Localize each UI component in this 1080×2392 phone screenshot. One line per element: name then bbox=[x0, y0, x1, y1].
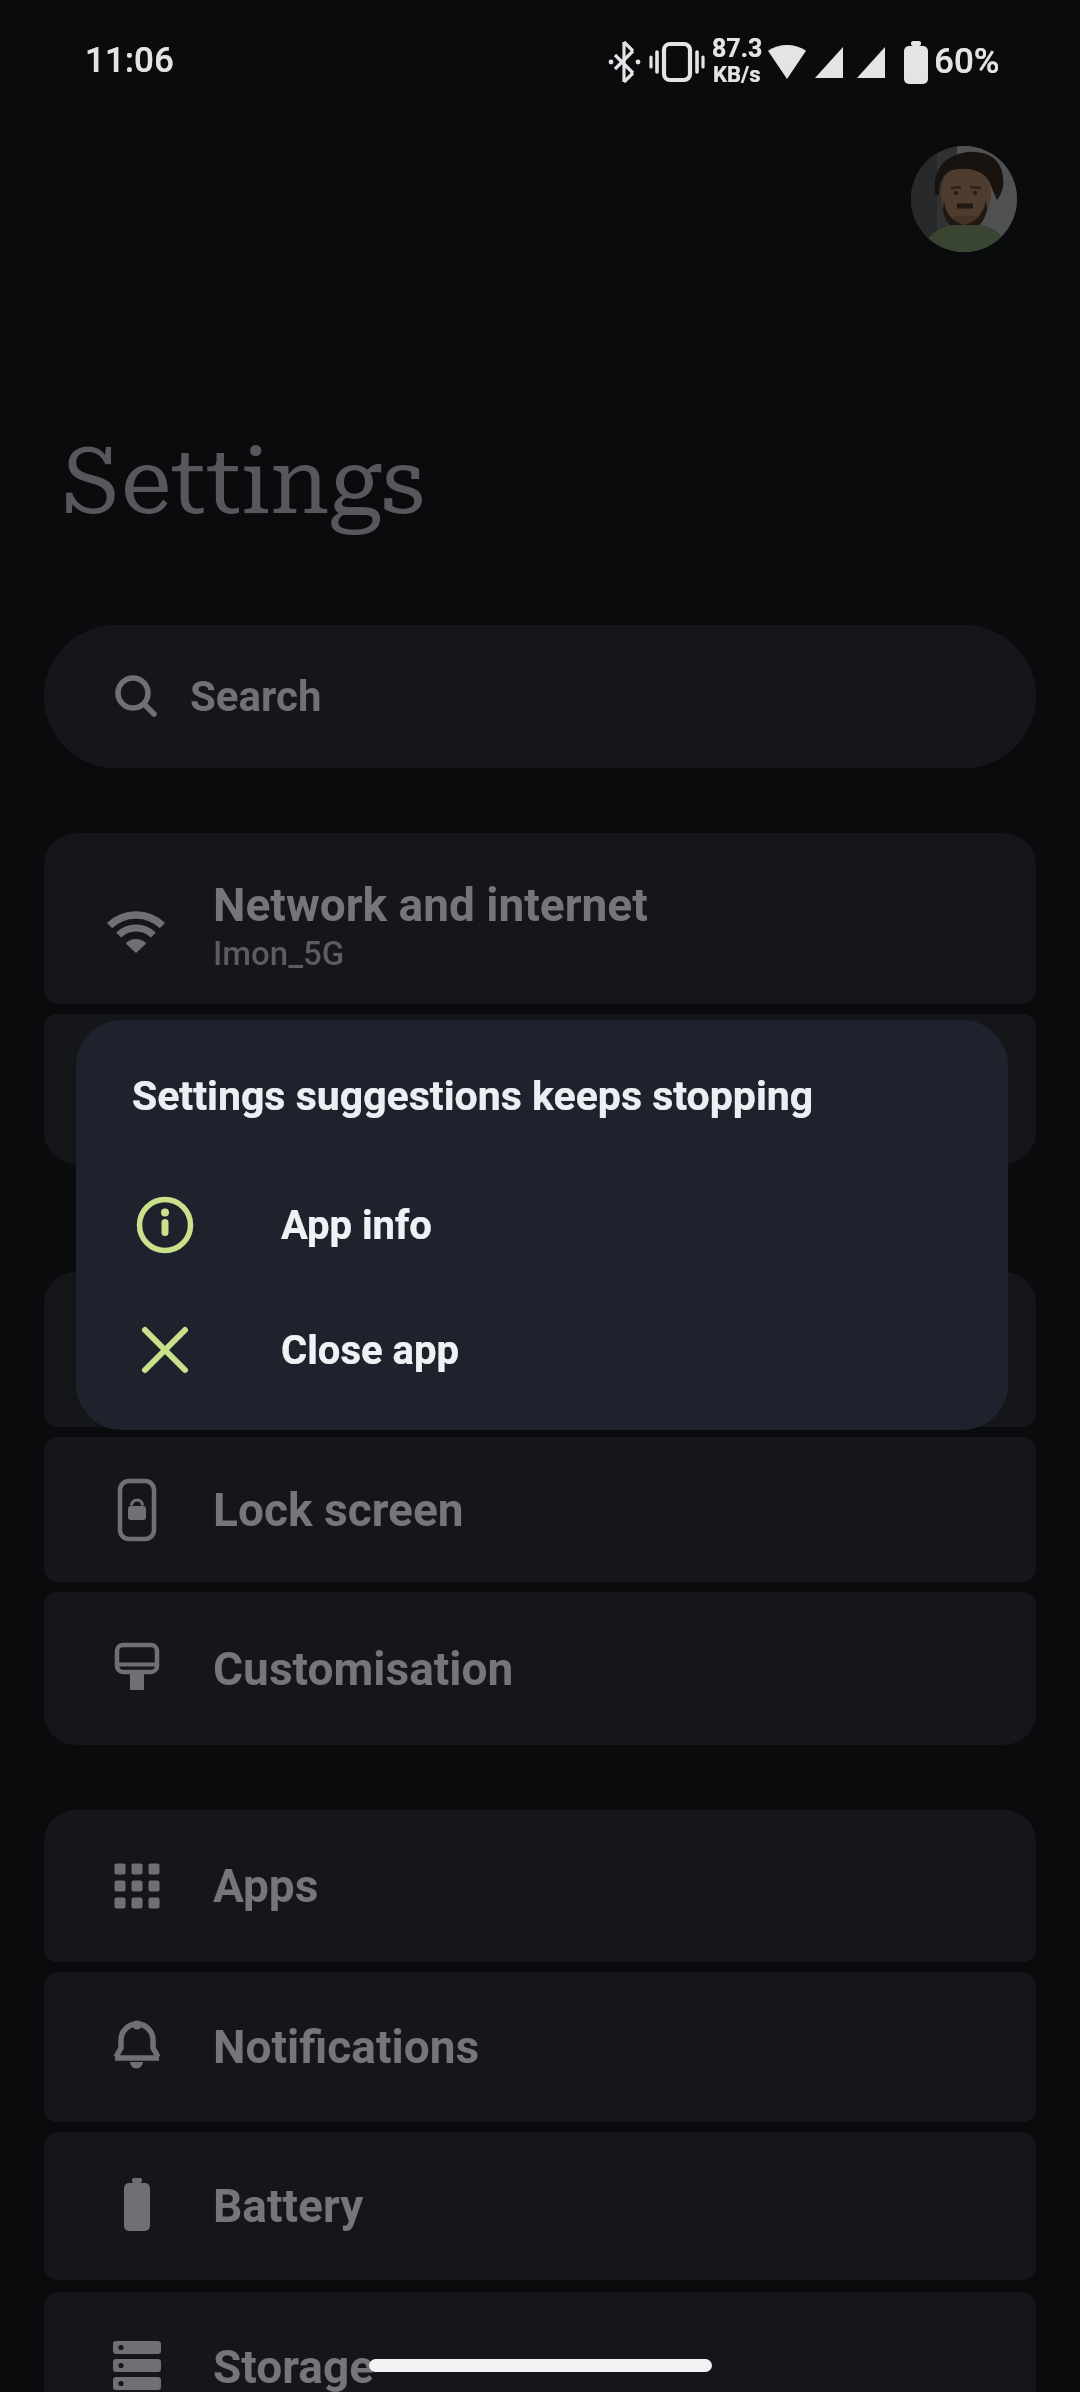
staticText: 87.3 bbox=[712, 34, 763, 63]
button[interactable] bbox=[911, 146, 1017, 252]
staticText: Battery bbox=[213, 2179, 364, 2233]
button[interactable]: Search bbox=[44, 625, 1036, 768]
button[interactable]: Lock screen bbox=[44, 1437, 1036, 1582]
staticText: Apps bbox=[213, 1859, 319, 1913]
staticText: KB/s bbox=[713, 62, 761, 88]
button[interactable]: Apps bbox=[44, 1810, 1036, 1962]
staticText: Lock screen bbox=[213, 1483, 464, 1537]
staticText: Search bbox=[190, 672, 322, 721]
staticText: App info bbox=[281, 1202, 432, 1249]
button[interactable]: Storage bbox=[44, 2292, 1036, 2392]
staticText: Customisation bbox=[213, 1642, 514, 1696]
staticText: Storage bbox=[213, 2340, 375, 2392]
staticText: Notifications bbox=[213, 2020, 480, 2074]
button[interactable]: Notifications bbox=[44, 1972, 1036, 2122]
staticText: Settings bbox=[62, 428, 425, 536]
button[interactable]: Customisation bbox=[44, 1592, 1036, 1745]
staticText: Settings suggestions keeps stopping bbox=[132, 1072, 814, 1120]
staticText: Network and internet bbox=[213, 878, 648, 932]
button[interactable]: Close app bbox=[76, 1285, 1008, 1415]
staticText: Close app bbox=[281, 1327, 460, 1374]
button[interactable]: App info bbox=[76, 1160, 1008, 1290]
staticText: Imon_5G bbox=[213, 934, 345, 973]
button[interactable]: Battery bbox=[44, 2132, 1036, 2280]
staticText: 11:06 bbox=[85, 40, 174, 81]
button[interactable]: Network and internet bbox=[44, 833, 1036, 1004]
staticText: 60% bbox=[934, 41, 1000, 82]
